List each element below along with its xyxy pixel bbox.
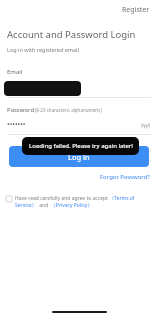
- button[interactable]: Register: [114, 2, 158, 18]
- staticText: Register: [122, 5, 150, 15]
- staticText: •••••••: [7, 120, 139, 130]
- staticText: Password: [7, 106, 35, 114]
- staticText: (8-20 characters, alphanumeric): [35, 107, 102, 113]
- staticText: Email: [7, 68, 23, 76]
- staticText: Log in with registered email: [7, 46, 79, 53]
- button[interactable]: jdgjdsfgs@sinaa.com: [0, 79, 158, 95]
- button[interactable]: Agree checkbox: [6, 195, 150, 209]
- staticText: Account and Password Login: [7, 28, 136, 41]
- staticText: Forgot Password?: [100, 173, 150, 181]
- staticText: Loading failed. Please try again later!: [29, 142, 133, 150]
- button[interactable]: Log in: [9, 146, 149, 167]
- button[interactable]: Show password: [139, 119, 151, 130]
- staticText: Have read carefully and agree to accept …: [15, 195, 150, 209]
- staticText: Log in: [68, 152, 90, 162]
- other: Agree checkbox: [6, 196, 12, 202]
- button[interactable]: Forgot Password?: [100, 172, 158, 182]
